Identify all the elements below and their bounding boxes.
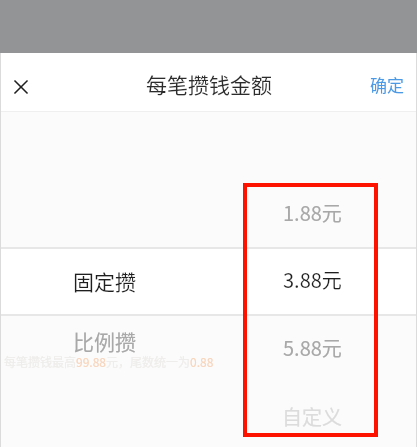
staticText: 1.88元 [283, 198, 342, 227]
button[interactable]: 1.88元 [283, 198, 342, 227]
button[interactable]: 固定攒 [73, 266, 136, 296]
staticText: 每笔攒钱最高99.88元，尾数统一为0.88 [4, 353, 214, 370]
staticText: 3.88元 [283, 265, 342, 294]
staticText: 5.88元 [283, 333, 342, 362]
staticText: 确定 [370, 72, 404, 97]
button[interactable]: Close [3, 69, 39, 105]
button[interactable]: 比例攒 [73, 326, 136, 356]
staticText: 比例攒 [73, 326, 136, 356]
staticText: 自定义 [282, 402, 342, 431]
button[interactable]: 确定 [370, 72, 404, 97]
button[interactable]: 5.88元 [283, 333, 342, 362]
staticText: 固定攒 [73, 266, 136, 296]
button[interactable]: 自定义 [282, 402, 342, 431]
staticText: 每笔攒钱金额 [146, 69, 272, 99]
button[interactable]: 3.88元 [283, 265, 342, 294]
